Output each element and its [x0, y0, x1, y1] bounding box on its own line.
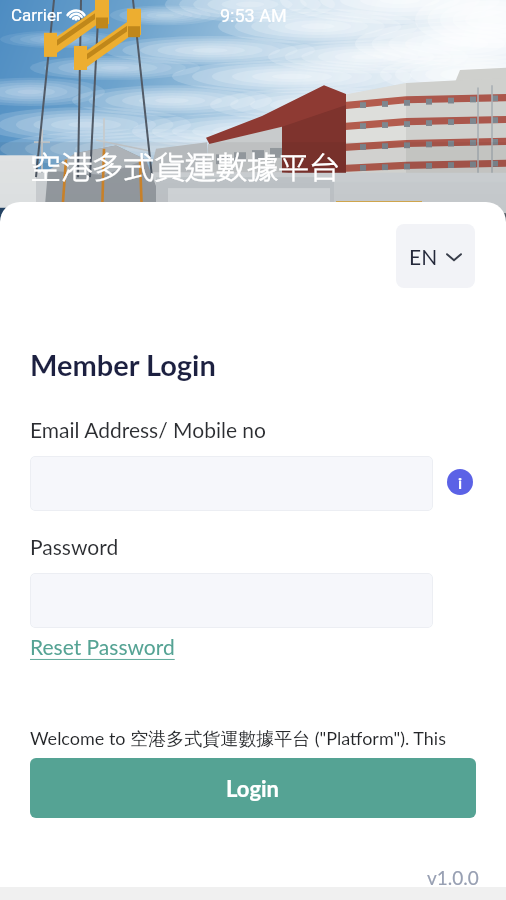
staticText: 空港多式貨運數據平台	[30, 143, 340, 188]
staticText: 9:53 AM	[220, 5, 287, 26]
staticText: Login	[226, 775, 280, 801]
staticText: Welcome to 空港多式貨運數據平台 ("Platform"). This	[30, 727, 446, 750]
staticText: Carrier	[11, 5, 62, 25]
button[interactable]: Information	[447, 469, 473, 495]
button[interactable]: Login	[30, 758, 476, 818]
staticText: v1.0.0	[427, 866, 479, 889]
staticText: Member Login	[30, 347, 216, 382]
staticText: Reset Password	[30, 634, 175, 659]
staticText: i	[458, 473, 463, 492]
staticText: EN	[409, 244, 438, 269]
button[interactable]: Reset Password	[30, 634, 175, 659]
button[interactable]: EN	[396, 224, 475, 288]
staticText: Password	[30, 534, 119, 559]
staticText: Email Address/ Mobile no	[30, 417, 266, 442]
